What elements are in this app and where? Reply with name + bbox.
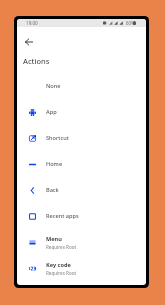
staticText: Menu: [46, 235, 62, 243]
staticText: Actions: [23, 56, 50, 66]
staticText: Home: [46, 160, 63, 168]
button[interactable]: Back: [22, 35, 36, 49]
staticText: 19:00: [26, 20, 38, 26]
staticText: Shortcut: [46, 134, 69, 142]
staticText: Requires Root: [46, 270, 77, 276]
staticText: None: [46, 82, 61, 90]
button[interactable]: Shortcut: [17, 125, 146, 151]
button[interactable]: Back: [17, 177, 146, 203]
staticText: Back: [46, 186, 59, 194]
staticText: Requires Root: [46, 244, 77, 250]
staticText: Key code: [46, 261, 71, 269]
staticText: 60%: [126, 20, 135, 26]
button[interactable]: App: [17, 99, 146, 125]
button[interactable]: None: [17, 73, 146, 99]
button[interactable]: Key code: [17, 255, 146, 281]
button[interactable]: Menu: [17, 229, 146, 255]
staticText: App: [46, 108, 57, 116]
staticText: Recent apps: [46, 212, 79, 220]
button[interactable]: Recent apps: [17, 203, 146, 229]
button[interactable]: Home: [17, 151, 146, 177]
